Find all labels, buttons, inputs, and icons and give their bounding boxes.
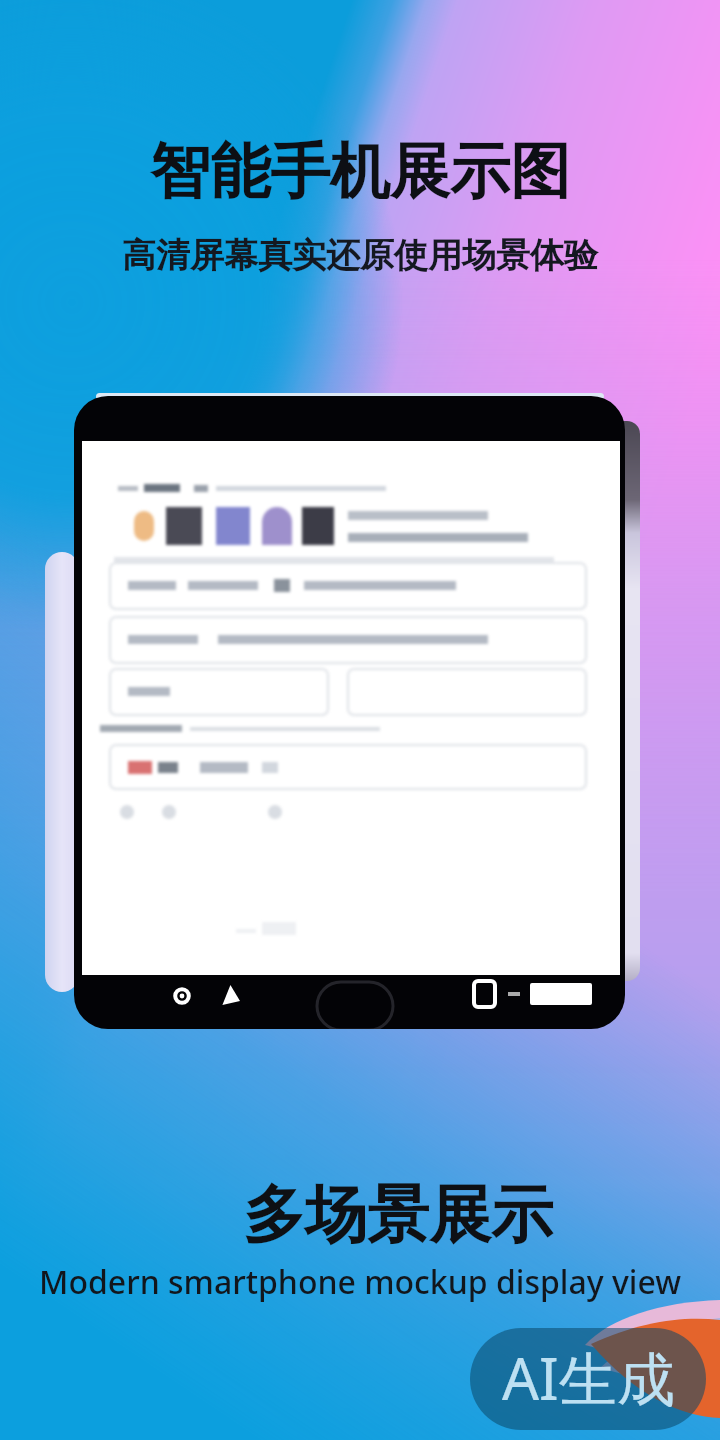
staticText: 高清屏幕真实还原使用场景体验 xyxy=(122,234,598,277)
button[interactable]: AI生成 xyxy=(470,1328,706,1430)
staticText: AI生成 xyxy=(502,1338,675,1417)
staticText: 多场景展示 xyxy=(243,1176,553,1254)
staticText: 智能手机展示图 xyxy=(150,134,570,210)
staticText: Modern smartphone mockup display view xyxy=(39,1260,681,1304)
